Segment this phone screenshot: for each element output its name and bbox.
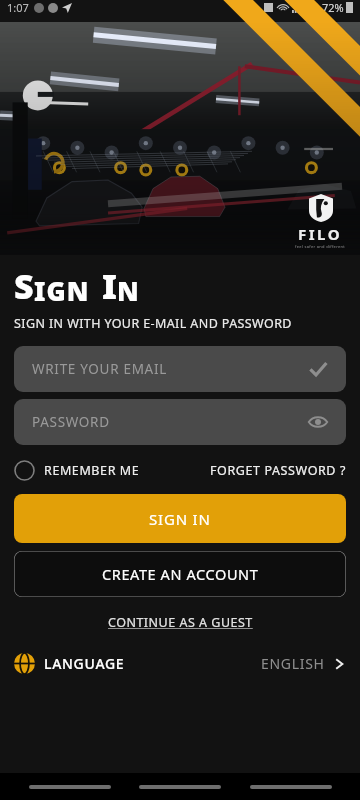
staticText: N: [117, 273, 140, 308]
other: Email valid: [308, 359, 328, 379]
button[interactable]: WRITE YOUR EMAIL: [14, 346, 346, 392]
staticText: SIGN IN WITH YOUR E-MAIL AND PASSWORD: [14, 315, 292, 332]
staticText: REMEMBER ME: [44, 462, 140, 479]
staticText: feel safer and different: [295, 244, 346, 249]
staticText: I: [102, 263, 117, 309]
button[interactable]: CONTINUE AS A GUEST: [104, 610, 257, 635]
staticText: CONTINUE AS A GUEST: [108, 614, 253, 631]
button[interactable]: Show password: [308, 412, 328, 432]
button[interactable]: SIGN IN: [14, 494, 346, 543]
staticText: LANGUAGE: [44, 654, 125, 673]
button[interactable]: REMEMBER ME: [14, 460, 140, 481]
staticText: SIGN IN: [149, 509, 211, 529]
staticText: 1:07: [7, 0, 29, 15]
button[interactable]: CREATE AN ACCOUNT: [14, 551, 346, 597]
staticText: 72%: [322, 0, 344, 15]
staticText: PASSWORD: [32, 413, 110, 431]
staticText: IGN: [34, 273, 90, 308]
staticText: FORGET PASSWORD ?: [210, 462, 346, 479]
staticText: FILO: [298, 224, 343, 244]
button[interactable]: Navigation: [139, 785, 221, 789]
button[interactable]: FORGET PASSWORD ?: [210, 462, 346, 479]
button[interactable]: Navigation: [250, 785, 332, 789]
staticText: ENGLISH: [261, 654, 325, 673]
button[interactable]: PASSWORD: [14, 399, 346, 445]
button[interactable]: Navigation: [29, 785, 111, 789]
button[interactable]: LANGUAGE: [0, 649, 360, 678]
staticText: S: [14, 263, 34, 309]
staticText: CREATE AN ACCOUNT: [102, 564, 259, 584]
staticText: WRITE YOUR EMAIL: [32, 360, 167, 378]
